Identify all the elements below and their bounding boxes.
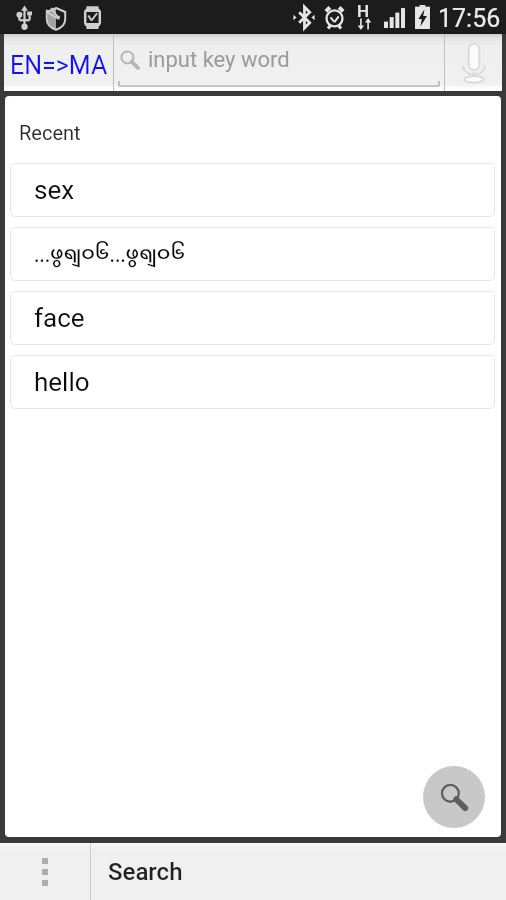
button[interactable]: More options: [0, 843, 90, 900]
staticText: Search: [108, 858, 183, 886]
staticText: face: [34, 303, 85, 333]
staticText: 17:56: [438, 4, 501, 33]
button[interactable]: ...ဖွရျဝ၆...ဖွရျဝ၆: [10, 227, 495, 281]
staticText: input key word: [148, 47, 290, 73]
button[interactable]: EN=>MA: [4, 34, 113, 91]
button[interactable]: Voice search: [445, 34, 502, 91]
button[interactable]: Search: [91, 843, 506, 900]
button[interactable]: sex: [10, 163, 495, 217]
staticText: Recent: [19, 121, 81, 144]
staticText: ...ဖွရျဝ၆...ဖွရျဝ၆: [34, 241, 186, 268]
button[interactable]: input key word: [114, 34, 444, 91]
staticText: H: [357, 1, 370, 21]
staticText: sex: [34, 175, 75, 205]
staticText: EN=>MA: [10, 51, 108, 80]
button[interactable]: Search: [423, 766, 485, 828]
button[interactable]: hello: [10, 355, 495, 409]
button[interactable]: face: [10, 291, 495, 345]
staticText: hello: [34, 367, 90, 397]
